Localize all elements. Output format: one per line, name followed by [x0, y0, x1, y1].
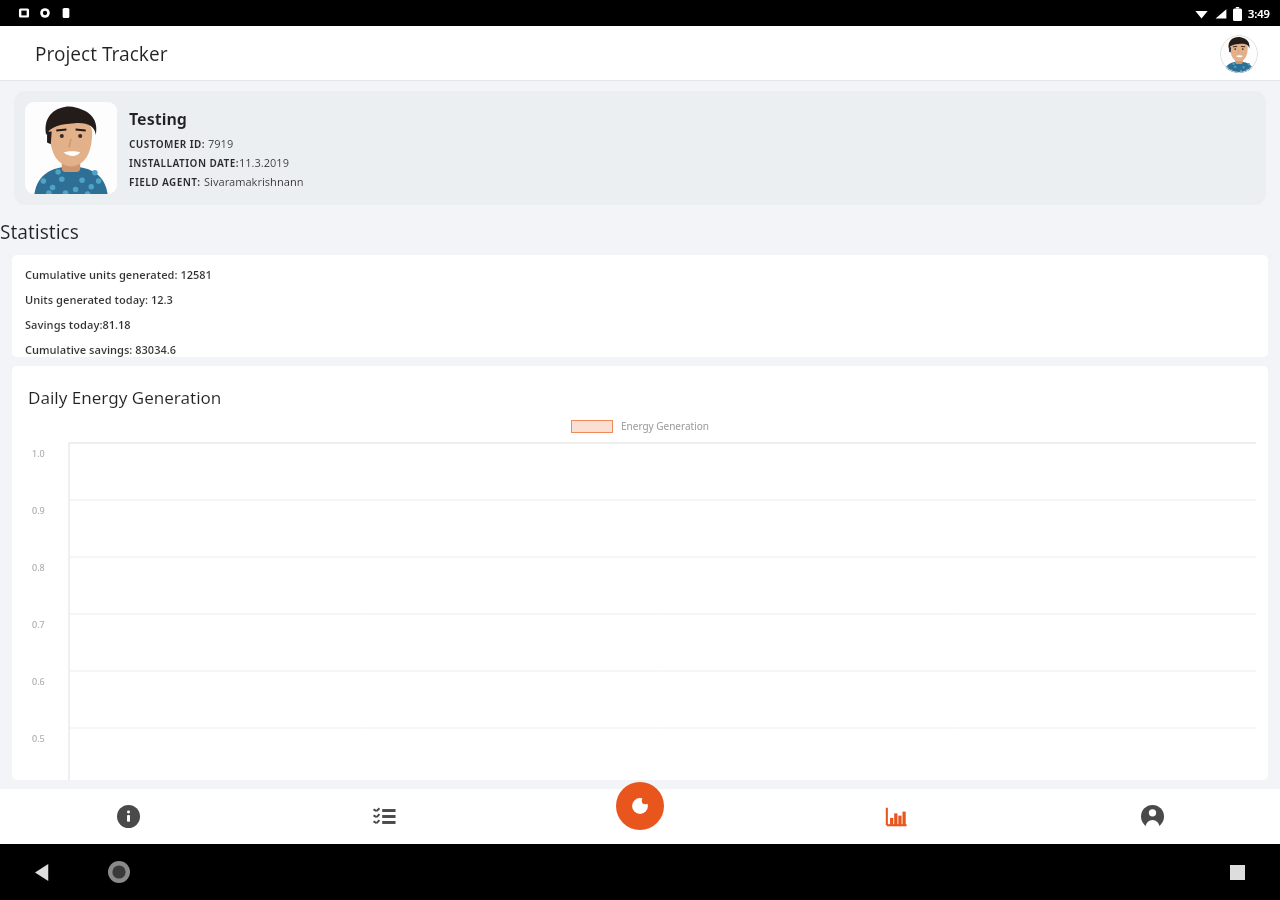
staticText: Cumulative savings: 83034.6	[25, 342, 177, 357]
button[interactable]: Information	[0, 789, 256, 844]
staticText: 11.3.2019	[239, 155, 289, 170]
staticText: Savings today:81.18	[25, 317, 131, 332]
button[interactable]: Back	[26, 855, 60, 889]
staticText: Units generated today: 12.3	[25, 292, 173, 307]
button[interactable]: Testing	[14, 91, 1266, 205]
button[interactable]: Statistics	[768, 789, 1024, 844]
button[interactable]: Home	[102, 855, 136, 889]
staticText: Sivaramakrishnann	[204, 174, 304, 189]
button[interactable]: Add	[616, 782, 664, 830]
staticText: 7919	[208, 136, 234, 151]
staticText: 0.9	[32, 504, 45, 516]
button[interactable]: Profile	[1220, 35, 1258, 73]
button[interactable]: Cumulative units generated: 12581	[12, 255, 1268, 357]
button[interactable]: Recent apps	[1220, 855, 1254, 889]
staticText: Statistics	[0, 219, 79, 245]
staticText: Testing	[129, 108, 187, 130]
staticText: 3:49	[1248, 6, 1270, 21]
staticText: Cumulative units generated: 12581	[25, 267, 212, 282]
button[interactable]: Account	[1024, 789, 1280, 844]
staticText: CUSTOMER ID:	[129, 137, 208, 151]
staticText: FIELD AGENT:	[129, 175, 204, 189]
staticText: Energy Generation	[621, 419, 709, 433]
staticText: 1.0	[32, 447, 45, 459]
staticText: 0.5	[32, 732, 45, 744]
staticText: INSTALLATION DATE:	[129, 156, 239, 170]
staticText: Project Tracker	[35, 41, 168, 67]
staticText: Daily Energy Generation	[28, 386, 222, 409]
staticText: 0.8	[32, 561, 45, 573]
staticText: 0.6	[32, 675, 45, 687]
staticText: 0.7	[32, 618, 45, 630]
button[interactable]: Tasks	[256, 789, 512, 844]
